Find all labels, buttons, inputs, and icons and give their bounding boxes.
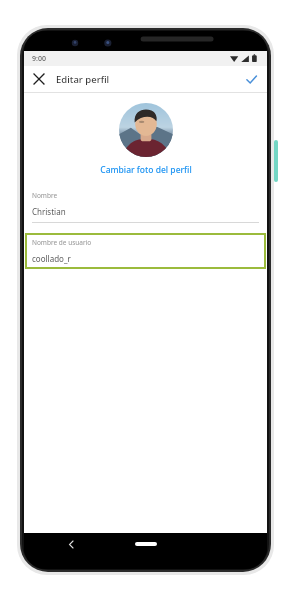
- staticText: Editar perfil: [56, 73, 110, 86]
- button[interactable]: Inicio: [135, 542, 157, 546]
- button[interactable]: Nombre de usuario: [25, 233, 266, 269]
- button[interactable]: Atrás: [62, 535, 80, 553]
- staticText: 9:00: [32, 54, 46, 64]
- staticText: coollado_r: [32, 253, 71, 264]
- staticText: Cambiar foto del perfil: [100, 164, 192, 176]
- button[interactable]: Foto de perfil: [119, 103, 173, 157]
- button[interactable]: Guardar: [240, 68, 262, 90]
- staticText: Nombre: [32, 191, 58, 200]
- staticText: Nombre de usuario: [32, 238, 92, 247]
- button[interactable]: Cambiar foto del perfil: [97, 163, 195, 177]
- staticText: Christian: [32, 206, 66, 217]
- button[interactable]: Cerrar: [28, 68, 50, 90]
- button[interactable]: Nombre: [24, 191, 267, 223]
